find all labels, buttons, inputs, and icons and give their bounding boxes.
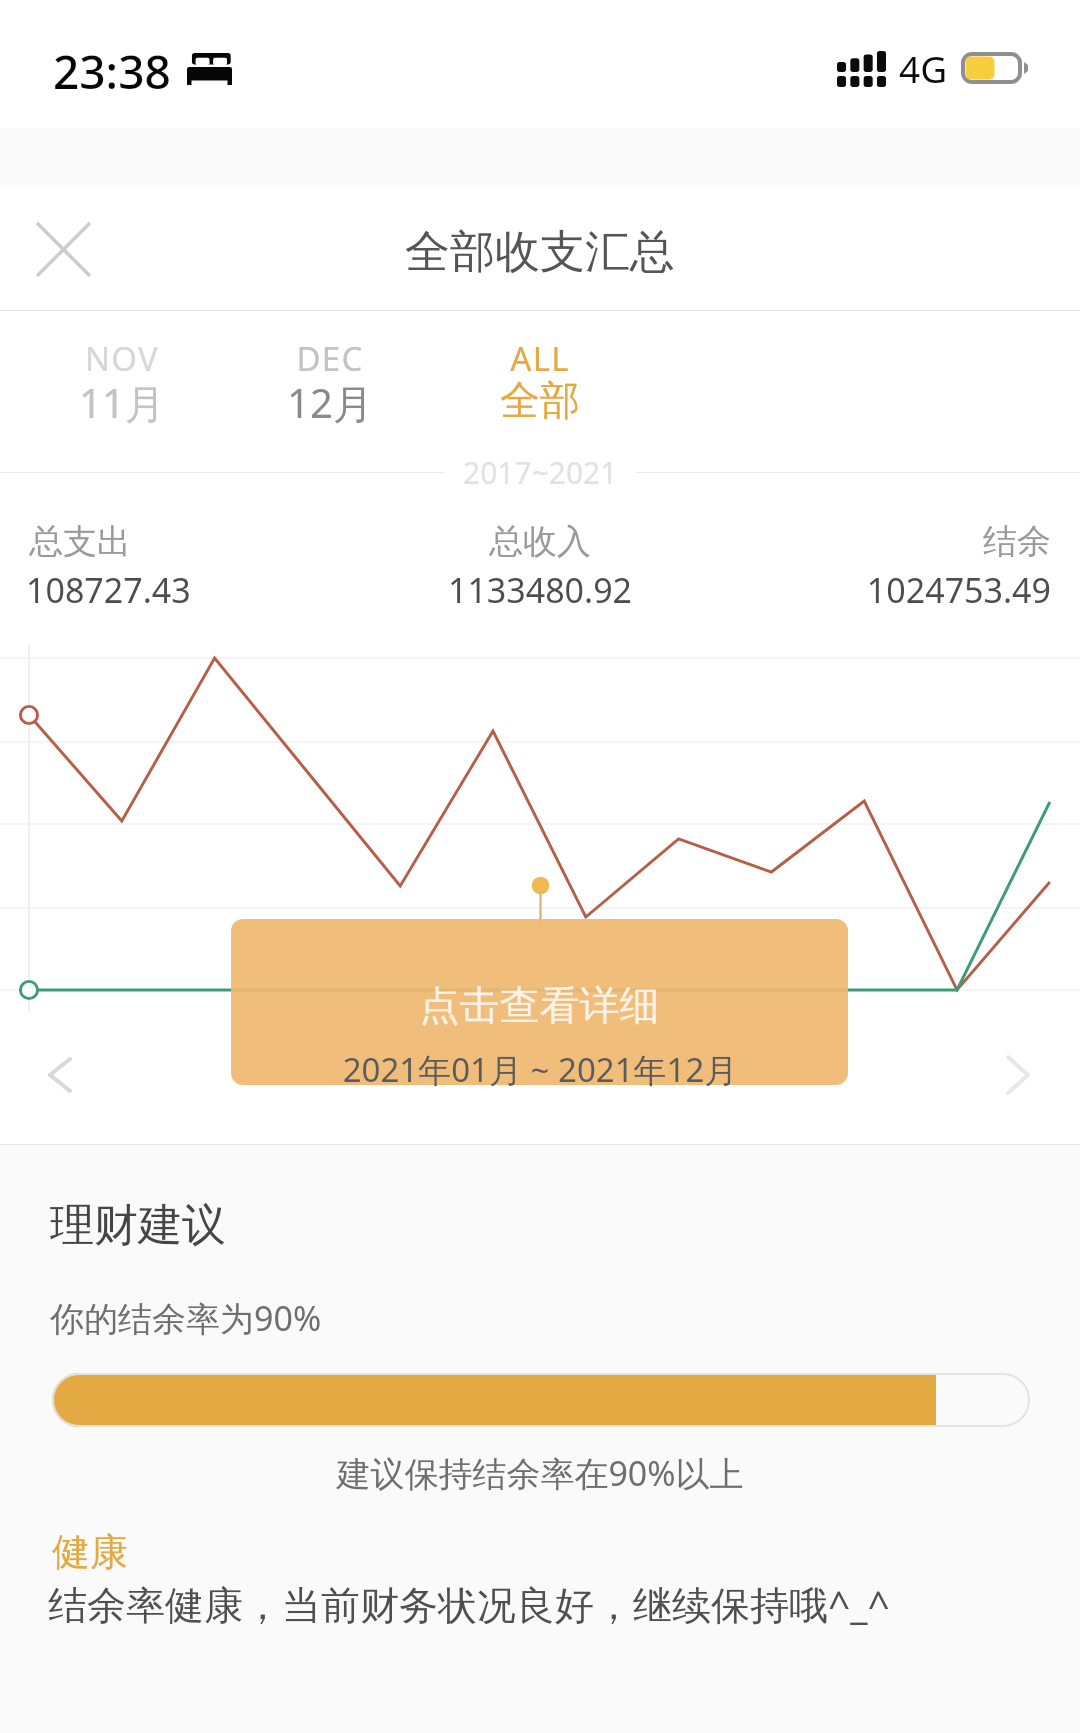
staticText: 全部收支汇总 [405,224,675,281]
staticText: 2021年01月 ~ 2021年12月 [0,1047,1080,1092]
button[interactable]: Previous period [12,1032,108,1118]
button[interactable]: 点击查看详细 [231,919,848,1085]
staticText: 结余率健康，当前财务状况良好，继续保持哦^_^ [48,1577,890,1630]
staticText: 总收入 [0,520,1080,563]
button[interactable]: Next period [970,1032,1066,1118]
staticText: 1024753.49 [0,567,1051,613]
staticText: 1133480.92 [0,567,1080,613]
staticText: 2017~2021 [463,452,618,493]
button[interactable]: NOV [27,312,217,470]
staticText: DEC [235,336,425,381]
staticText: 23:38 [53,40,171,103]
staticText: 4G [899,43,948,93]
staticText: 你的结余率为90% [50,1295,322,1341]
staticText: ALL [445,336,635,381]
staticText: 建议保持结余率在90%以上 [0,1450,1080,1496]
staticText: 108727.43 [26,567,191,613]
staticText: 健康 [52,1528,128,1576]
button[interactable]: DEC [235,312,425,470]
staticText: 点击查看详细 [231,980,848,1030]
staticText: 12月 [235,375,425,430]
button[interactable]: ALL [445,312,635,470]
staticText: NOV [27,336,217,381]
button[interactable]: Close [20,206,106,292]
staticText: 全部 [445,375,635,425]
staticText: 理财建议 [50,1198,226,1253]
staticText: 总支出 [29,520,131,563]
staticText: 11月 [27,375,217,430]
staticText: 结余 [0,520,1051,563]
